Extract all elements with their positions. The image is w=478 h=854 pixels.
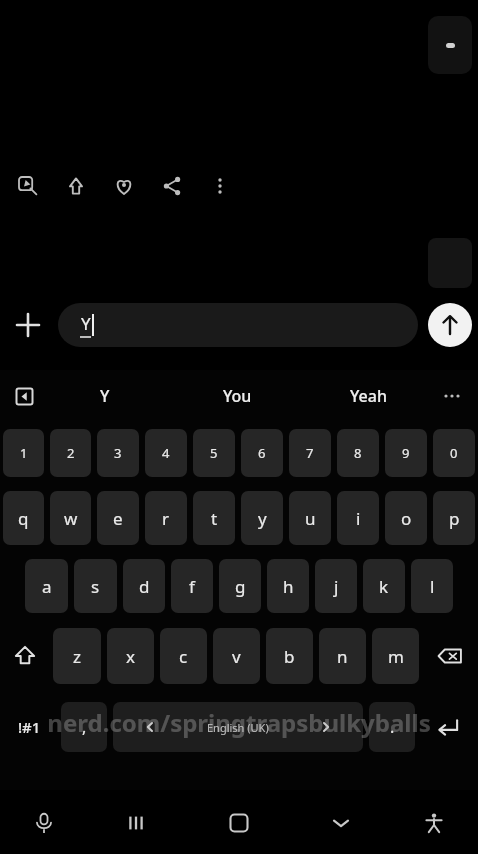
staticText: h bbox=[283, 575, 294, 598]
button[interactable]: t bbox=[193, 491, 235, 545]
staticText: 8 bbox=[354, 444, 362, 462]
button[interactable]: English (UK) bbox=[113, 702, 363, 752]
button[interactable]: q bbox=[3, 491, 44, 545]
button[interactable]: 6 bbox=[241, 429, 283, 477]
button[interactable]: h bbox=[267, 559, 309, 613]
staticText: 2 bbox=[67, 444, 75, 462]
button[interactable]: 2 bbox=[50, 429, 91, 477]
button[interactable]: u bbox=[289, 491, 331, 545]
staticText: u bbox=[305, 507, 316, 530]
button[interactable]: Clipboard bbox=[4, 376, 44, 416]
staticText: 4 bbox=[162, 444, 170, 462]
button[interactable]: You bbox=[189, 374, 285, 418]
button[interactable]: b bbox=[266, 628, 313, 684]
button[interactable]: 0 bbox=[433, 429, 475, 477]
button[interactable]: Backspace bbox=[422, 620, 478, 692]
button[interactable]: Voice input bbox=[0, 792, 87, 854]
staticText: v bbox=[232, 645, 241, 668]
button[interactable]: Send bbox=[428, 303, 472, 347]
staticText: n bbox=[337, 645, 348, 668]
staticText: o bbox=[401, 507, 412, 530]
button[interactable]: c bbox=[160, 628, 207, 684]
staticText: i bbox=[356, 507, 361, 530]
staticText: c bbox=[179, 645, 188, 668]
button[interactable]: , bbox=[61, 702, 107, 752]
button[interactable]: g bbox=[219, 559, 261, 613]
button[interactable]: Y bbox=[58, 303, 418, 347]
button[interactable]: Reply bbox=[4, 162, 52, 210]
staticText: k bbox=[379, 575, 389, 598]
button[interactable]: Recents bbox=[87, 792, 185, 854]
staticText: r bbox=[162, 507, 170, 530]
button[interactable]: . bbox=[369, 702, 415, 752]
staticText: t bbox=[211, 507, 218, 530]
staticText: nerd.com/springtrapsbulkyballs bbox=[47, 706, 431, 739]
button[interactable]: Like bbox=[52, 162, 100, 210]
button[interactable]: Yeah bbox=[320, 374, 416, 418]
button[interactable]: Enter bbox=[418, 692, 478, 762]
button[interactable]: i bbox=[337, 491, 379, 545]
button[interactable]: a bbox=[25, 559, 68, 613]
staticText: 0 bbox=[450, 444, 458, 462]
button[interactable]: d bbox=[123, 559, 165, 613]
button[interactable]: Y bbox=[57, 374, 153, 418]
staticText: Yeah bbox=[350, 385, 387, 407]
button[interactable]: p bbox=[433, 491, 475, 545]
button[interactable]: 5 bbox=[193, 429, 235, 477]
staticText: . bbox=[390, 716, 395, 738]
button[interactable]: 1 bbox=[3, 429, 44, 477]
staticText: 1 bbox=[20, 444, 28, 462]
button[interactable]: v bbox=[213, 628, 260, 684]
staticText: e bbox=[113, 507, 123, 530]
button[interactable]: Accessibility bbox=[390, 792, 478, 854]
staticText: f bbox=[189, 575, 195, 598]
staticText: 7 bbox=[306, 444, 314, 462]
button[interactable]: w bbox=[50, 491, 91, 545]
button[interactable]: o bbox=[385, 491, 427, 545]
button[interactable]: Shift bbox=[0, 620, 50, 692]
button[interactable]: y bbox=[241, 491, 283, 545]
button[interactable]: 9 bbox=[385, 429, 427, 477]
staticText: z bbox=[73, 645, 81, 668]
staticText: w bbox=[64, 507, 78, 530]
button[interactable]: s bbox=[74, 559, 117, 613]
staticText: , bbox=[82, 716, 87, 738]
button[interactable]: e bbox=[97, 491, 139, 545]
button[interactable]: !#1 bbox=[0, 692, 58, 762]
button[interactable]: r bbox=[145, 491, 187, 545]
button[interactable]: Share bbox=[148, 162, 196, 210]
button[interactable]: 3 bbox=[97, 429, 139, 477]
staticText: You bbox=[223, 385, 252, 407]
button[interactable]: Favourite bbox=[100, 162, 148, 210]
staticText: !#1 bbox=[18, 717, 41, 737]
button[interactable]: Home bbox=[185, 792, 292, 854]
staticText: q bbox=[18, 507, 29, 530]
staticText: English (UK) bbox=[207, 720, 269, 735]
staticText: b bbox=[284, 645, 295, 668]
staticText: Y bbox=[100, 385, 110, 407]
button[interactable]: 4 bbox=[145, 429, 187, 477]
staticText: g bbox=[235, 575, 246, 598]
staticText: 3 bbox=[114, 444, 122, 462]
button[interactable]: More suggestions bbox=[432, 376, 472, 416]
button[interactable]: f bbox=[171, 559, 213, 613]
button[interactable]: 8 bbox=[337, 429, 379, 477]
button[interactable]: 7 bbox=[289, 429, 331, 477]
staticText: s bbox=[91, 575, 100, 598]
button[interactable]: More options bbox=[196, 162, 244, 210]
staticText: p bbox=[449, 507, 460, 530]
staticText: m bbox=[388, 645, 404, 668]
button[interactable]: k bbox=[363, 559, 405, 613]
staticText: 6 bbox=[258, 444, 266, 462]
button[interactable]: j bbox=[315, 559, 357, 613]
button[interactable]: m bbox=[372, 628, 419, 684]
button[interactable]: Add attachment bbox=[2, 299, 54, 351]
button[interactable]: z bbox=[53, 628, 101, 684]
button[interactable]: Hide keyboard bbox=[292, 792, 390, 854]
button[interactable]: x bbox=[107, 628, 154, 684]
staticText: Y bbox=[81, 312, 91, 335]
staticText: 9 bbox=[402, 444, 410, 462]
button[interactable]: n bbox=[319, 628, 366, 684]
staticText: d bbox=[139, 575, 150, 598]
button[interactable]: l bbox=[411, 559, 453, 613]
